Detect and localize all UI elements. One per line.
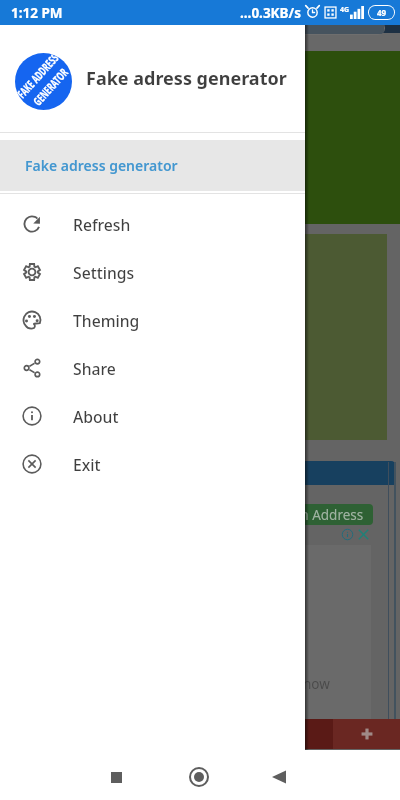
button[interactable]: Exit: [0, 440, 305, 488]
button[interactable]: Recent apps: [92, 753, 140, 800]
button[interactable]: Settings: [0, 248, 305, 296]
staticText: 4G: [340, 5, 350, 15]
staticText: Settings: [73, 262, 135, 283]
staticText: GENERATOR: [29, 65, 71, 109]
staticText: About: [73, 406, 119, 427]
button[interactable]: About: [0, 392, 305, 440]
staticText: 1:12 PM: [11, 4, 63, 22]
button[interactable]: Fake adress generator: [0, 140, 305, 191]
staticText: FAKE ADDRESS: [15, 53, 62, 101]
button[interactable]: Theming: [0, 296, 305, 344]
staticText: Theming: [73, 310, 140, 331]
staticText: Fake adress generator: [25, 156, 178, 175]
button[interactable]: Refresh: [0, 200, 305, 248]
staticText: Refresh: [73, 214, 131, 235]
staticText: Fake adress generator: [86, 66, 287, 91]
button[interactable]: Home: [175, 753, 223, 800]
staticText: ...0.3KB/s: [240, 4, 301, 22]
staticText: Exit: [73, 454, 101, 475]
button[interactable]: Back: [255, 753, 303, 800]
staticText: Generate Random Address: [193, 506, 364, 524]
button[interactable]: Share: [0, 344, 305, 392]
staticText: 49: [377, 7, 387, 18]
staticText: Stop seeing this ad Why this ad? now: [82, 675, 330, 693]
staticText: Share: [73, 358, 116, 379]
